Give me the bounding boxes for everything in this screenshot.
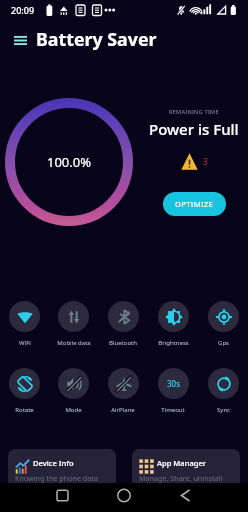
staticText: Brightness bbox=[158, 339, 189, 347]
button[interactable]: Sync bbox=[198, 368, 248, 414]
staticText: Mobile data bbox=[57, 339, 91, 347]
button[interactable]: Recents bbox=[43, 483, 83, 512]
staticText: Sync bbox=[217, 406, 230, 414]
staticText: REMAINING TIME bbox=[169, 108, 219, 116]
staticText: Gps bbox=[218, 339, 229, 347]
button[interactable]: Mobile data bbox=[49, 301, 98, 347]
staticText: Battery Saver bbox=[36, 27, 157, 51]
button[interactable]: AirPlane bbox=[98, 368, 148, 414]
button[interactable]: Menu bbox=[8, 28, 32, 52]
staticText: Rotate bbox=[15, 406, 34, 414]
staticText: 3 bbox=[203, 156, 208, 167]
staticText: OPTIMIZE bbox=[175, 199, 214, 209]
staticText: WiFi bbox=[19, 339, 31, 347]
button[interactable]: Rotate bbox=[0, 368, 49, 414]
staticText: Mode bbox=[65, 406, 82, 414]
staticText: Knowing the phone data bbox=[15, 473, 98, 483]
staticText: AirPlane bbox=[111, 406, 135, 414]
button[interactable]: OPTIMIZE bbox=[163, 192, 226, 216]
button[interactable]: App Manager bbox=[132, 449, 240, 499]
button[interactable]: Back bbox=[165, 483, 205, 512]
button[interactable]: Brightness bbox=[148, 301, 198, 347]
button[interactable]: Mode bbox=[49, 368, 98, 414]
staticText: 30s bbox=[167, 378, 181, 389]
button[interactable]: Home bbox=[104, 483, 144, 512]
staticText: Manage, Share, uninstall bbox=[139, 473, 223, 483]
button[interactable]: 30s bbox=[148, 368, 198, 414]
staticText: Bluetooth bbox=[109, 339, 137, 347]
staticText: App Manager bbox=[157, 458, 207, 468]
staticText: Device Info bbox=[33, 458, 74, 468]
button[interactable]: WiFi bbox=[0, 301, 49, 347]
staticText: 20:09 bbox=[11, 4, 35, 16]
button[interactable]: Bluetooth bbox=[98, 301, 148, 347]
button[interactable]: Gps bbox=[198, 301, 248, 347]
button[interactable]: Device Info bbox=[8, 449, 116, 499]
staticText: 100.0% bbox=[47, 153, 92, 171]
staticText: Power is Full bbox=[149, 119, 239, 139]
staticText: Timeout bbox=[161, 406, 185, 414]
